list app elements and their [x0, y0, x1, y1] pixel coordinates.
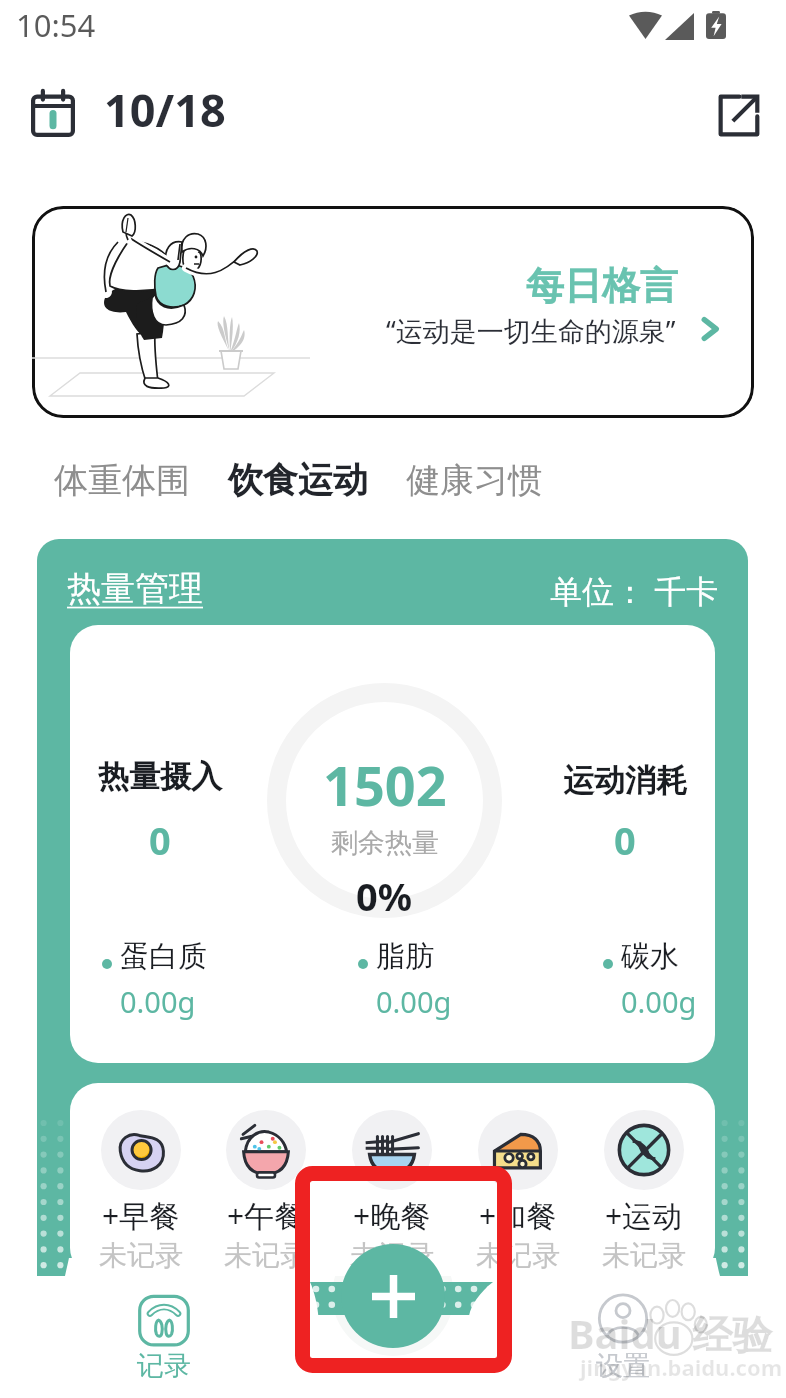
button[interactable]: 热量管理	[67, 567, 203, 610]
staticText: 未记录	[99, 1238, 183, 1273]
staticText: 0	[149, 814, 171, 866]
button[interactable]: +午餐	[203, 1110, 329, 1273]
staticText: 单位： 千卡	[550, 569, 719, 613]
staticText: 蛋白质	[120, 938, 207, 975]
staticText: 0.00g	[120, 982, 196, 1021]
staticText: 未记录	[602, 1238, 686, 1273]
staticText: 体重体围	[54, 459, 190, 502]
staticText: 饮食运动	[228, 458, 368, 502]
staticText: +早餐	[102, 1195, 180, 1236]
staticText: +晚餐	[353, 1195, 431, 1236]
staticText: “运动是一切生命的源泉”	[386, 312, 676, 349]
staticText: +午餐	[227, 1195, 305, 1236]
staticText: 0%	[356, 870, 413, 922]
button[interactable]: +早餐	[78, 1110, 203, 1273]
button[interactable]: 体重体围	[54, 453, 190, 508]
staticText: +加餐	[479, 1195, 557, 1236]
button[interactable]: +晚餐	[329, 1110, 455, 1273]
staticText: 0.00g	[376, 982, 452, 1021]
staticText: 碳水	[621, 938, 679, 975]
staticText: 10/18	[104, 79, 226, 140]
button[interactable]: 饮食运动	[228, 452, 368, 508]
button[interactable]: 设置	[575, 1294, 671, 1383]
button[interactable]: +加餐	[455, 1110, 581, 1273]
staticText: 未记录	[476, 1238, 560, 1273]
staticText: 健康习惯	[406, 459, 542, 502]
button[interactable]: Add	[341, 1244, 445, 1348]
staticText: 脂肪	[376, 938, 434, 975]
staticText: 0.00g	[621, 982, 697, 1021]
staticText: 设置	[596, 1349, 650, 1383]
button[interactable]: Calendar	[23, 83, 83, 143]
staticText: +运动	[605, 1195, 683, 1236]
staticText: 每日格言	[526, 262, 678, 310]
staticText: 热量摄入	[98, 757, 222, 796]
button[interactable]: Share	[707, 84, 769, 146]
staticText: 运动消耗	[563, 761, 687, 800]
button[interactable]: 健康习惯	[406, 453, 542, 508]
staticText: 10:54	[16, 4, 96, 46]
button[interactable]: 记录	[116, 1292, 212, 1383]
button[interactable]: +运动	[581, 1110, 707, 1273]
staticText: 1502	[323, 748, 447, 822]
button[interactable]: 每日格言	[32, 206, 754, 418]
staticText: 未记录	[224, 1238, 308, 1273]
staticText: 记录	[137, 1349, 191, 1383]
staticText: 剩余热量	[331, 826, 439, 860]
staticText: Baidu 经验	[568, 1306, 773, 1361]
staticText: 未记录	[350, 1238, 434, 1273]
staticText: 热量管理	[67, 567, 203, 610]
staticText: jingyan.baidu.com	[580, 1352, 783, 1382]
staticText: 0	[614, 814, 636, 866]
